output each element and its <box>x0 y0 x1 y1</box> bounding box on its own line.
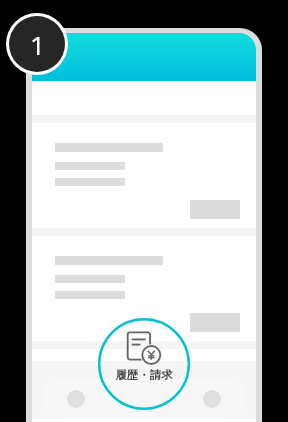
button[interactable]: Account <box>178 379 246 419</box>
staticText: 1 <box>30 27 45 62</box>
button[interactable]: History and billing <box>110 379 178 419</box>
staticText: 履歴・請求 <box>115 368 173 382</box>
button[interactable]: Home <box>42 379 110 419</box>
button[interactable]: 履歴・請求 <box>98 318 190 410</box>
button[interactable] <box>32 236 256 341</box>
button[interactable] <box>32 123 256 228</box>
